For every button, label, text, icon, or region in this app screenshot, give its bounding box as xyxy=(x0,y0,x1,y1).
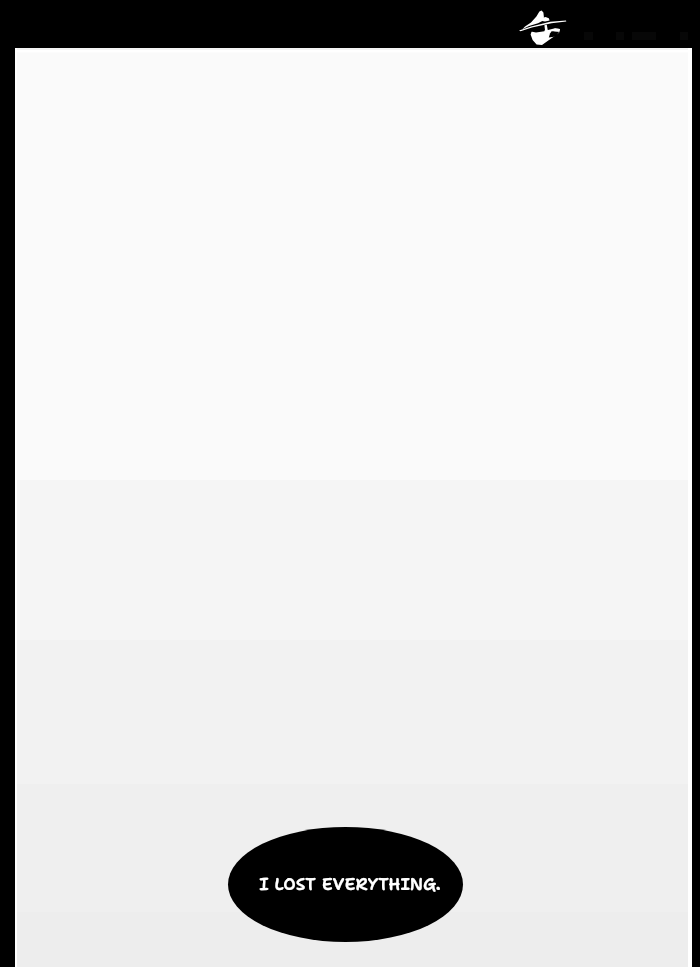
button[interactable]: Comic page, tap to show controls xyxy=(0,0,700,967)
other: Previous panel artwork xyxy=(510,0,580,48)
button[interactable]: I LOST EVERYTHING. xyxy=(228,827,463,942)
staticText: I LOST EVERYTHING. xyxy=(259,873,441,896)
